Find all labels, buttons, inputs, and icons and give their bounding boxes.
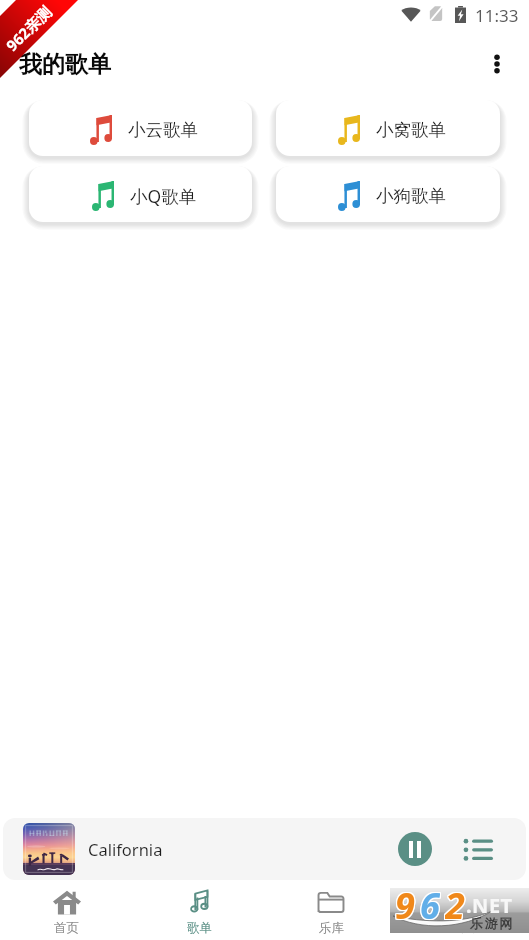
button[interactable]: 小Q歌单 xyxy=(29,166,252,222)
staticText: 2 xyxy=(446,881,466,926)
button[interactable]: More options xyxy=(481,48,513,80)
button[interactable]: 小窝歌单 xyxy=(276,100,500,156)
button[interactable]: 小云歌单 xyxy=(29,100,252,156)
staticText: 9 xyxy=(396,881,416,926)
staticText: 6 xyxy=(419,881,439,926)
staticText: 9 xyxy=(396,882,416,927)
staticText: California xyxy=(88,838,163,860)
button[interactable]: 乐库 xyxy=(265,882,397,940)
button[interactable]: 我的 xyxy=(397,882,529,940)
staticText: 小狗歌单 xyxy=(376,185,446,207)
staticText: 962亲测 xyxy=(1,1,55,55)
staticText: 6 xyxy=(421,882,441,927)
staticText: 2 xyxy=(445,880,465,925)
staticText: 9 xyxy=(394,881,414,926)
staticText: 6 xyxy=(420,881,440,926)
staticText: 9 xyxy=(394,882,414,927)
staticText: 2 xyxy=(445,882,465,927)
staticText: 2 xyxy=(444,882,464,927)
staticText: 6 xyxy=(421,881,441,926)
staticText: 9 xyxy=(395,881,415,926)
staticText: 9 xyxy=(395,882,415,927)
staticText: 首页 xyxy=(54,920,79,936)
staticText: 2 xyxy=(446,882,466,927)
staticText: 9 xyxy=(395,880,415,925)
button[interactable]: Playlist xyxy=(464,831,493,865)
staticText: 11:33 xyxy=(475,4,519,27)
staticText: 歌单 xyxy=(187,920,212,936)
staticText: 9 xyxy=(394,880,414,925)
staticText: 6 xyxy=(420,880,440,925)
staticText: 6 xyxy=(419,882,439,927)
staticText: 6 xyxy=(419,880,439,925)
staticText: 乐游网 xyxy=(470,915,514,931)
button[interactable]: 歌单 xyxy=(133,882,265,940)
button[interactable]: Pause xyxy=(398,832,432,866)
staticText: 6 xyxy=(420,882,440,927)
staticText: 2 xyxy=(444,880,464,925)
staticText: 小窝歌单 xyxy=(376,119,446,141)
staticText: 小Q歌单 xyxy=(130,184,197,208)
staticText: 乐库 xyxy=(319,920,344,936)
staticText: 2 xyxy=(444,881,464,926)
button[interactable]: 首页 xyxy=(0,882,133,940)
staticText: 我的歌单 xyxy=(19,50,111,79)
staticText: 9 xyxy=(396,880,416,925)
staticText: 2 xyxy=(446,880,466,925)
button[interactable]: 小狗歌单 xyxy=(276,166,500,222)
staticText: 2 xyxy=(445,881,465,926)
staticText: .NET xyxy=(466,892,513,919)
staticText: 6 xyxy=(421,880,441,925)
staticText: 小云歌单 xyxy=(128,119,198,141)
staticText: 我的 xyxy=(451,920,476,936)
button[interactable]: California xyxy=(3,818,526,880)
